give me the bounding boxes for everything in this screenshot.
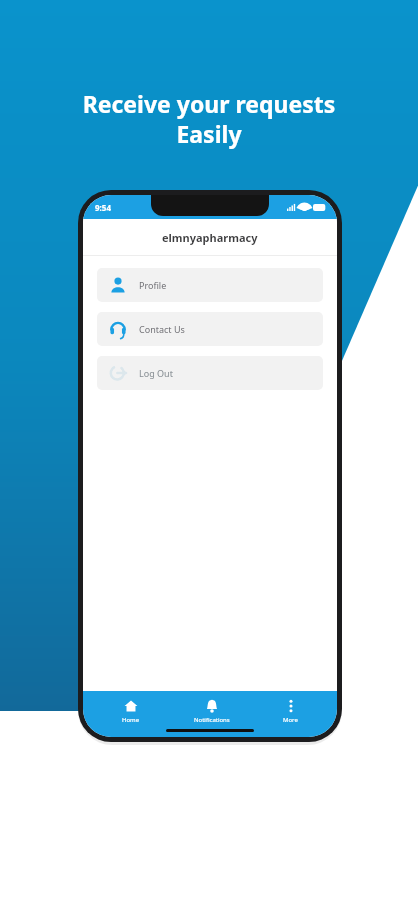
staticText: Receive your requests Easily	[0, 88, 418, 149]
other: More	[284, 699, 298, 713]
button[interactable]: Home	[108, 697, 154, 726]
staticText: More	[283, 716, 298, 724]
staticText: 9:54	[95, 202, 111, 213]
staticText: Contact Us	[139, 323, 185, 335]
other: Home	[124, 699, 138, 713]
button[interactable]: Notifications	[180, 697, 244, 726]
staticText: Home	[122, 716, 140, 724]
staticText: elmnyapharmacy	[162, 230, 258, 245]
button[interactable]: Log Out	[97, 356, 323, 390]
button[interactable]: Contact Us	[97, 312, 323, 346]
staticText: Log Out	[139, 367, 173, 379]
button[interactable]: More	[269, 697, 312, 726]
staticText: Notifications	[194, 716, 230, 724]
staticText: Profile	[139, 279, 167, 291]
other: Notifications	[205, 699, 219, 713]
button[interactable]: Profile	[97, 268, 323, 302]
